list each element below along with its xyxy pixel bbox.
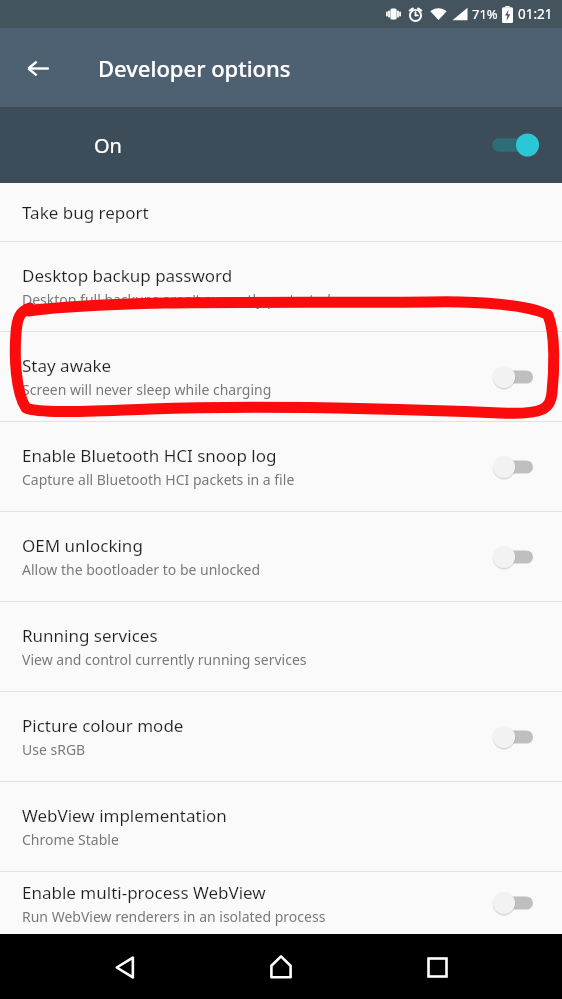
button[interactable]: Toggle Enable multi-process WebView	[490, 888, 540, 918]
button[interactable]: Toggle Stay awake	[490, 362, 540, 392]
staticText: On	[94, 132, 122, 159]
button[interactable]: Toggle Picture colour mode	[490, 722, 540, 752]
staticText: Desktop backup password	[22, 264, 233, 287]
staticText: Screen will never sleep while charging	[22, 380, 272, 399]
button[interactable]: Picture colour mode	[0, 692, 562, 781]
staticText: Allow the bootloader to be unlocked	[22, 560, 261, 579]
staticText: Capture all Bluetooth HCI packets in a f…	[22, 470, 295, 489]
button[interactable]: Back	[94, 936, 156, 998]
staticText: OEM unlocking	[22, 534, 143, 557]
button[interactable]: OEM unlocking	[0, 512, 562, 601]
staticText: Picture colour mode	[22, 714, 184, 737]
staticText: Run WebView renderers in an isolated pro…	[22, 907, 326, 926]
staticText: Stay awake	[22, 354, 112, 377]
button[interactable]: On	[0, 107, 562, 183]
button[interactable]: Enable multi-process WebView	[0, 872, 562, 934]
staticText: Enable Bluetooth HCI snoop log	[22, 444, 277, 467]
staticText: 71%	[472, 5, 498, 23]
button[interactable]: Recent apps	[406, 936, 468, 998]
button[interactable]: Desktop backup password	[0, 242, 562, 331]
staticText: Take bug report	[22, 201, 149, 224]
button[interactable]: Stay awake	[0, 332, 562, 421]
button[interactable]: Running services	[0, 602, 562, 691]
button[interactable]: Take bug report	[0, 183, 562, 241]
staticText: Enable multi-process WebView	[22, 881, 266, 904]
staticText: View and control currently running servi…	[22, 650, 307, 669]
button[interactable]: Enable Bluetooth HCI snoop log	[0, 422, 562, 511]
staticText: Desktop full backups aren't currently pr…	[22, 290, 331, 309]
staticText: Running services	[22, 624, 158, 647]
staticText: Use sRGB	[22, 740, 86, 759]
staticText: WebView implementation	[22, 804, 227, 827]
button[interactable]: Toggle Enable Bluetooth HCI snoop log	[490, 452, 540, 482]
staticText: Chrome Stable	[22, 830, 119, 849]
button[interactable]: Toggle OEM unlocking	[490, 542, 540, 572]
button[interactable]: WebView implementation	[0, 782, 562, 871]
staticText: Developer options	[98, 53, 291, 83]
staticText: 01:21	[518, 5, 553, 23]
button[interactable]: Home	[250, 936, 312, 998]
button[interactable]: Back	[14, 44, 62, 92]
